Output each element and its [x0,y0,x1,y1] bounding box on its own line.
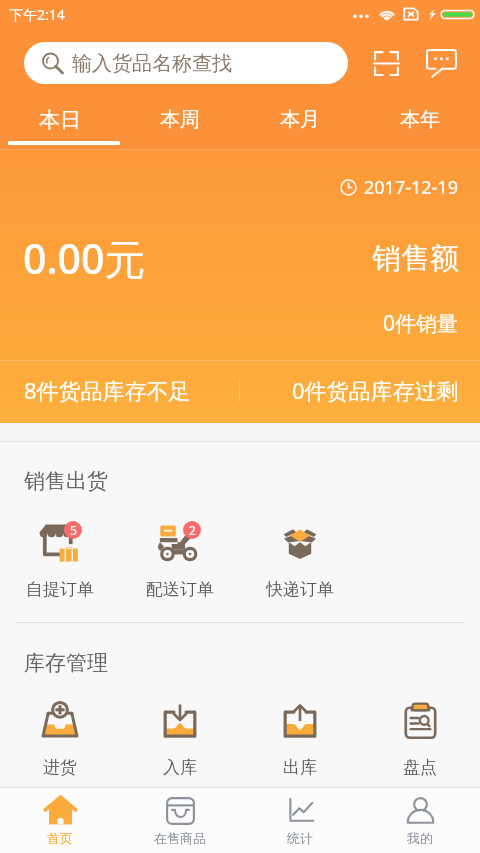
staticText: 下午2:14 [9,5,65,24]
staticText: 0件销量 [383,309,459,338]
button[interactable]: 5 [0,520,120,600]
staticText: 自提订单 [26,579,94,600]
staticText: 销售额 [372,240,459,277]
button[interactable]: 0件货品库存过剩 [240,359,480,421]
button[interactable]: Messages [424,46,458,80]
staticText: 本月 [280,107,320,132]
button[interactable]: 本周 [120,98,240,141]
button[interactable]: 本年 [360,98,480,141]
staticText: 在售商品 [154,830,206,846]
staticText: 库存管理 [24,650,108,676]
staticText: 本周 [160,107,200,132]
staticText: 2017-12-19 [364,175,458,200]
staticText: 0件货品库存过剩 [292,375,459,405]
staticText: 快递订单 [266,579,334,600]
button[interactable]: 盘点 [360,698,480,778]
button[interactable]: 2 [120,520,240,600]
button[interactable]: Scan barcode [370,47,402,79]
staticText: 入库 [163,757,197,778]
staticText: 出库 [283,757,317,778]
button[interactable]: 8件货品库存不足 [0,359,239,421]
button[interactable]: 统计 [240,788,360,853]
button[interactable]: 本日 [0,98,120,141]
staticText: 我的 [407,830,433,846]
staticText: 2 [189,522,196,538]
button[interactable]: 进货 [0,698,120,778]
staticText: 销售出货 [24,468,108,494]
button[interactable]: 出库 [240,698,360,778]
staticText: 盘点 [403,757,437,778]
staticText: 本年 [400,107,440,132]
button[interactable]: 快递订单 [240,520,360,600]
button[interactable]: 输入货品名称查找 [24,42,348,84]
button[interactable]: 本月 [240,98,360,141]
button[interactable]: 入库 [120,698,240,778]
staticText: 输入货品名称查找 [72,51,232,76]
button[interactable]: 首页 [0,788,120,853]
staticText: 5 [70,522,77,538]
button[interactable]: 我的 [360,788,480,853]
staticText: 首页 [47,830,73,846]
staticText: 本日 [39,107,81,133]
staticText: 0.00元 [23,230,146,286]
staticText: 进货 [43,757,77,778]
staticText: 统计 [287,830,313,846]
staticText: 配送订单 [146,579,214,600]
staticText: 8件货品库存不足 [24,375,191,405]
button[interactable]: 在售商品 [120,788,240,853]
